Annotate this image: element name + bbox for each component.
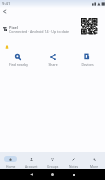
button[interactable]: QR code [81, 18, 97, 34]
button[interactable]: Find nearby [2, 54, 34, 67]
staticText: Connected · Android 14 · Up to date [9, 29, 70, 34]
staticText: Home [6, 164, 16, 168]
staticText: Account [25, 164, 38, 168]
button[interactable]: Notes [63, 152, 84, 168]
button[interactable]: Home [0, 152, 21, 168]
staticText: Devices [81, 62, 94, 67]
button[interactable]: Home [48, 170, 57, 179]
staticText: More [90, 164, 99, 168]
button[interactable]: Devices [71, 54, 103, 67]
button[interactable]: Back [27, 170, 36, 179]
button[interactable]: More [84, 152, 105, 168]
button[interactable]: Groups [42, 152, 63, 168]
button[interactable]: Share [37, 54, 69, 67]
button[interactable]: Account [21, 152, 42, 168]
button[interactable]: Recent apps [69, 170, 78, 179]
staticText: Notes [69, 164, 79, 168]
staticText: 9:41 [2, 1, 11, 7]
staticText: Share [48, 62, 58, 67]
staticText: Find nearby [9, 62, 28, 67]
button[interactable]: Back [0, 7, 9, 16]
staticText: Pixel [9, 25, 18, 30]
staticText: Groups [47, 164, 59, 168]
